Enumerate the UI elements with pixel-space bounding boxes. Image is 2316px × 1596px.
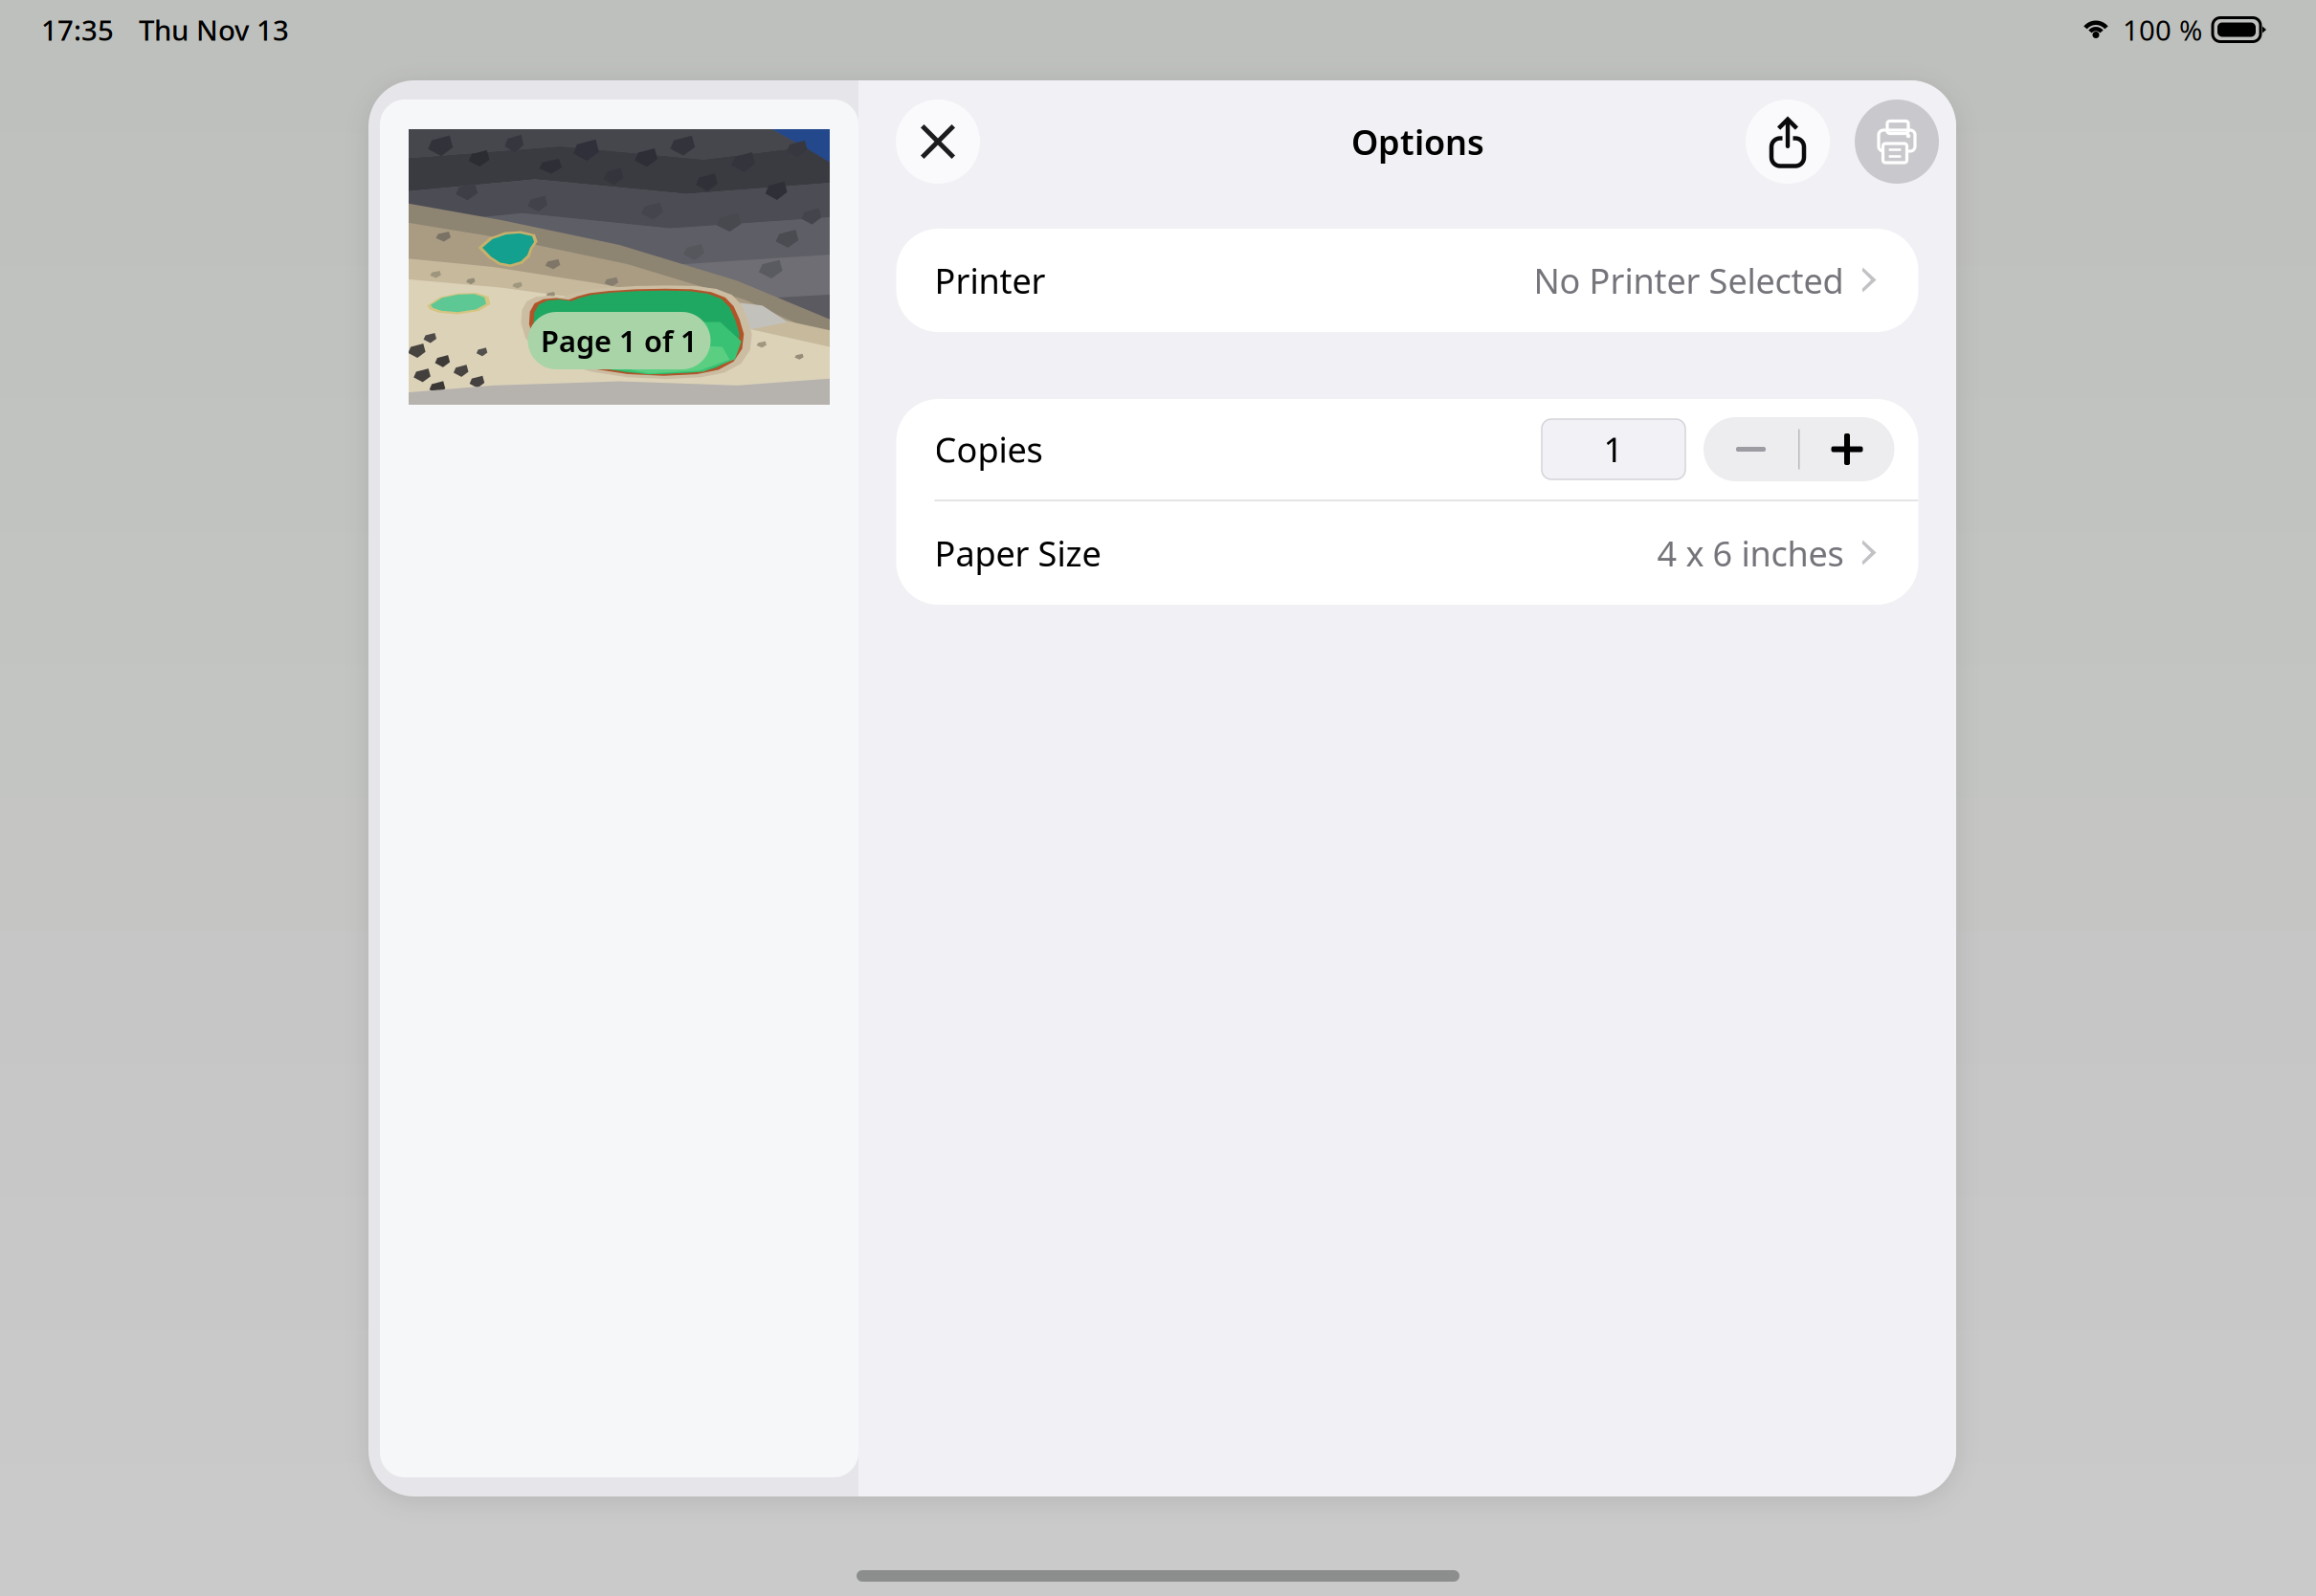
staticText: Printer bbox=[935, 257, 1046, 303]
staticText: 4 x 6 inches bbox=[1657, 530, 1844, 576]
button[interactable]: Share bbox=[1746, 100, 1830, 184]
button[interactable]: Printer bbox=[896, 229, 1918, 332]
staticText: No Printer Selected bbox=[1534, 257, 1844, 303]
staticText: Page 1 of 1 bbox=[541, 321, 698, 360]
button[interactable]: Paper Size bbox=[896, 501, 1918, 605]
staticText: Options bbox=[1351, 119, 1484, 164]
button[interactable]: Decrease copies bbox=[1704, 417, 1798, 481]
staticText: Copies bbox=[935, 426, 1043, 472]
button[interactable]: Close bbox=[896, 100, 980, 184]
staticText: 100 % bbox=[2123, 11, 2202, 48]
button[interactable]: Increase copies bbox=[1800, 417, 1894, 481]
staticText: 17:35 bbox=[41, 11, 114, 48]
staticText: Thu Nov 13 bbox=[139, 11, 289, 48]
staticText: 1 bbox=[1603, 426, 1624, 472]
button[interactable]: Print bbox=[1830, 100, 1914, 184]
staticText: Paper Size bbox=[935, 530, 1101, 576]
